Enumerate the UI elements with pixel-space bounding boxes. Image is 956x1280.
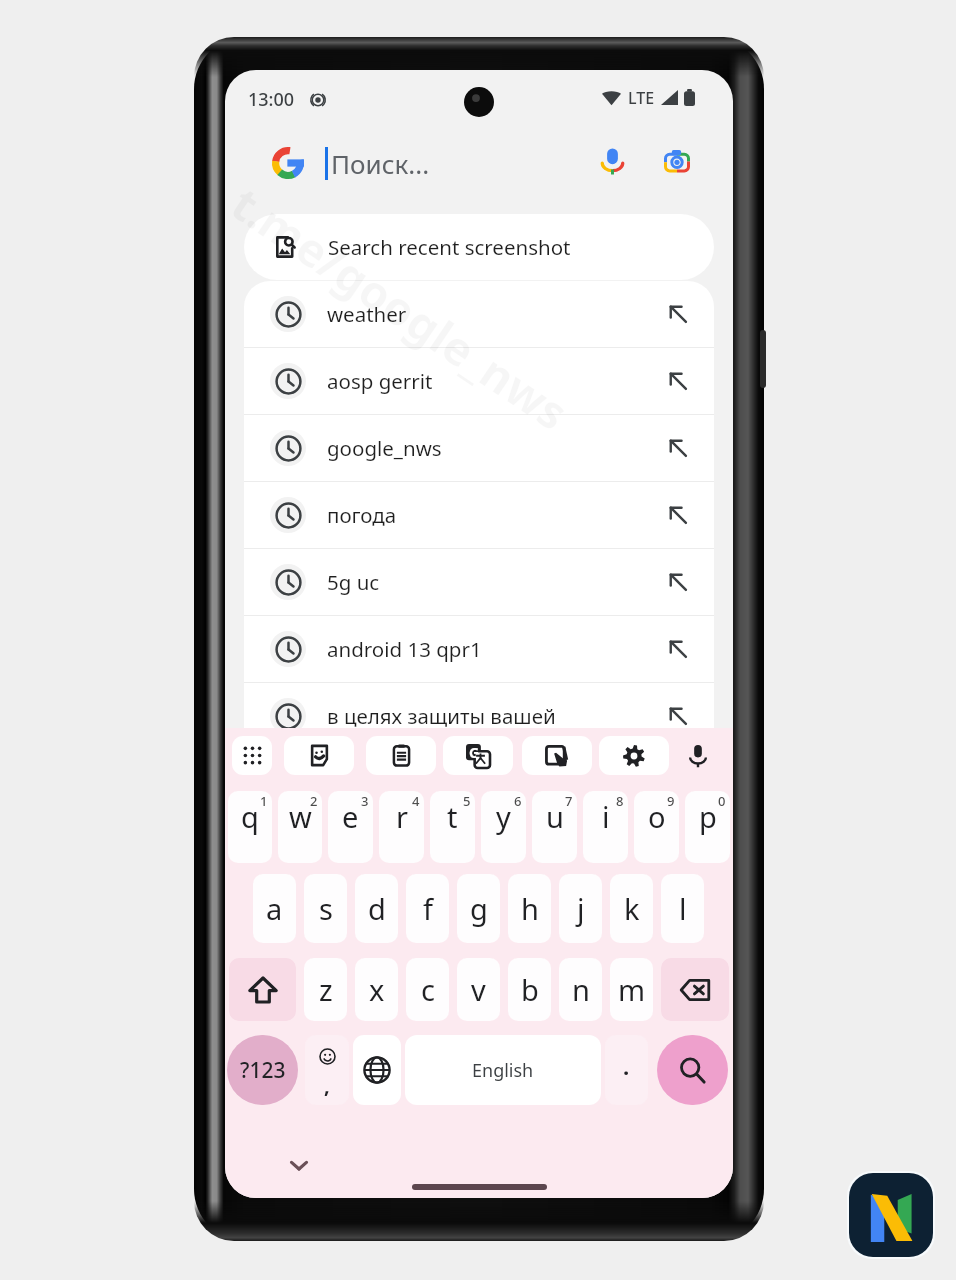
staticText: d [368,889,386,928]
staticText: 9 [667,792,675,810]
staticText: x [369,970,385,1009]
button[interactable]: Change language [353,1035,401,1105]
button[interactable]: 5 [430,791,475,863]
staticText: погода [327,501,397,529]
staticText: English [472,1058,534,1083]
button[interactable]: android 13 qpr1 [244,616,714,682]
staticText: 5 [463,792,471,810]
staticText: l [679,889,687,928]
button[interactable]: k [610,874,653,943]
button[interactable]: погода [244,482,714,548]
staticText: a [266,889,283,928]
button[interactable]: ?123 [227,1035,298,1105]
staticText: f [423,889,433,928]
staticText: android 13 qpr1 [327,635,482,663]
button[interactable]: n [559,958,602,1021]
button[interactable]: x [355,958,398,1021]
button[interactable]: 4 [379,791,424,863]
button[interactable]: 6 [481,791,526,863]
button[interactable]: 1 [228,791,272,863]
staticText: 2 [310,792,318,810]
staticText: ?123 [240,1056,286,1085]
button[interactable]: 9 [634,791,679,863]
button[interactable]: 8 [583,791,628,863]
button[interactable]: b [508,958,551,1021]
staticText: m [618,970,646,1009]
staticText: h [521,889,539,928]
staticText: Search recent screenshot [328,233,571,261]
staticText: o [648,797,666,836]
button[interactable]: Clipboard [366,736,436,775]
button[interactable]: 7 [532,791,577,863]
staticText: s [319,889,333,928]
button[interactable]: 3 [328,791,373,863]
staticText: b [521,970,539,1009]
staticText: 5g uc [327,568,380,596]
staticText: j [577,889,585,928]
staticText: i [602,797,610,836]
button[interactable]: Поиск... [225,130,733,196]
staticText: n [572,970,590,1009]
button[interactable]: z [304,958,347,1021]
button[interactable]: Search recent screenshot [244,214,714,280]
button[interactable]: Settings [599,736,669,775]
button[interactable]: Backspace [661,958,729,1021]
button[interactable]: 5g uc [244,549,714,615]
button[interactable]: 2 [278,791,322,863]
button[interactable]: Voice search [589,138,635,184]
staticText: p [699,797,717,836]
staticText: z [319,970,333,1009]
staticText: q [241,797,259,836]
staticText: g [470,889,488,928]
staticText: 8 [616,792,624,810]
staticText: t [447,797,458,836]
button[interactable]: google_nws [244,415,714,481]
staticText: 3 [361,792,369,810]
button[interactable]: s [304,874,347,943]
button[interactable]: Shift [229,958,296,1021]
staticText: e [342,797,359,836]
button[interactable]: Emoji and comma [305,1035,349,1105]
button[interactable]: j [559,874,602,943]
staticText: LTE [628,87,655,107]
button[interactable]: weather [244,281,714,347]
staticText: 6 [514,792,522,810]
button[interactable]: v [457,958,500,1021]
button[interactable]: Show apps [232,736,272,775]
button[interactable]: h [508,874,551,943]
button[interactable]: m [610,958,653,1021]
button[interactable]: Google Lens [654,138,700,184]
staticText: 13:00 [248,87,295,112]
staticText: w [289,797,312,836]
staticText: c [421,970,435,1009]
staticText: k [624,889,640,928]
staticText: t.me/google_nws [225,172,581,444]
button[interactable]: Handwriting [522,736,592,775]
button[interactable]: d [355,874,398,943]
staticText: 0 [718,792,726,810]
button[interactable]: Translate [443,736,513,775]
button[interactable]: c [406,958,449,1021]
staticText: u [546,797,564,836]
button[interactable]: g [457,874,500,943]
button[interactable]: Voice input [677,736,719,775]
staticText: в целях защиты вашей [327,702,556,730]
button[interactable]: Stickers [284,736,354,775]
button[interactable]: 0 [685,791,730,863]
button[interactable]: Search [657,1035,728,1105]
button[interactable]: l [661,874,704,943]
staticText: . [623,1051,630,1081]
button[interactable]: в целях защиты вашей [244,683,714,749]
staticText: r [396,797,408,836]
button[interactable]: Hide keyboard [278,1144,320,1186]
staticText: aosp gerrit [327,367,433,395]
staticText: 1 [260,792,268,810]
button[interactable]: . [605,1035,648,1105]
staticText: google_nws [327,434,442,462]
staticText: y [496,797,511,836]
button[interactable]: a [253,874,296,943]
staticText: Поиск... [331,146,430,181]
button[interactable]: English [405,1035,601,1105]
button[interactable]: aosp gerrit [244,348,714,414]
button[interactable]: f [406,874,449,943]
